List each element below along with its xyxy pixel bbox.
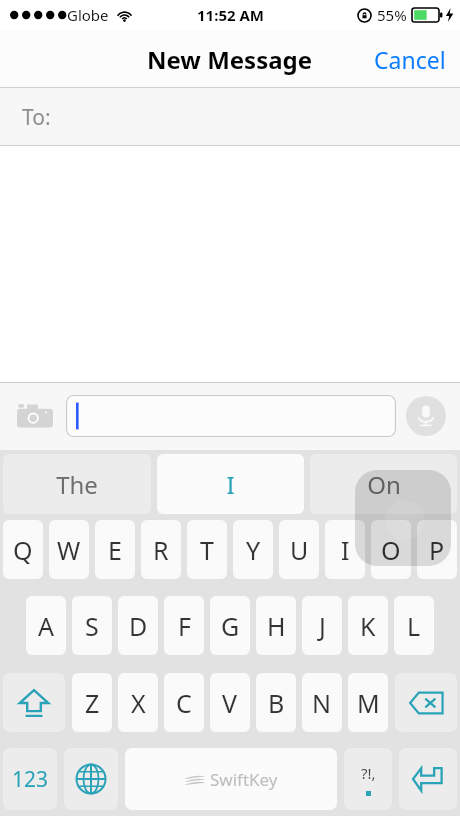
staticText: R	[153, 533, 169, 567]
staticText: G	[221, 609, 240, 643]
staticText: SwiftKey	[210, 768, 278, 791]
staticText: X	[131, 686, 146, 720]
button[interactable]: V	[210, 673, 250, 732]
button[interactable]: Q	[3, 520, 43, 579]
staticText: Q	[13, 533, 33, 567]
staticText: 55%	[377, 5, 407, 25]
button[interactable]: O	[371, 520, 411, 579]
staticText: V	[222, 686, 238, 720]
button[interactable]: R	[141, 520, 181, 579]
button[interactable]: G	[210, 596, 250, 655]
button[interactable]: Change language	[64, 748, 118, 810]
button[interactable]: E	[95, 520, 135, 579]
button[interactable]: N	[302, 673, 342, 732]
button[interactable]: Punctuation	[344, 748, 392, 810]
staticText: 11:52 AM	[197, 5, 264, 25]
button[interactable]: Return	[399, 748, 457, 810]
button[interactable]: H	[256, 596, 296, 655]
staticText: D	[129, 609, 148, 643]
button[interactable]: K	[348, 596, 388, 655]
staticText: Globe	[67, 5, 109, 25]
button[interactable]: Y	[233, 520, 273, 579]
button[interactable]: Z	[72, 673, 112, 732]
staticText: H	[267, 609, 286, 643]
staticText: Y	[246, 533, 261, 567]
button[interactable]	[66, 395, 396, 437]
staticText: The	[56, 468, 98, 501]
button[interactable]: M	[348, 673, 388, 732]
button[interactable]: S	[72, 596, 112, 655]
staticText: A	[38, 609, 54, 643]
button[interactable]: A	[26, 596, 66, 655]
button[interactable]: I	[157, 454, 304, 514]
button[interactable]: J	[302, 596, 342, 655]
staticText: C	[176, 686, 192, 720]
staticText: L	[407, 609, 421, 643]
staticText: S	[85, 609, 99, 643]
button[interactable]: Space	[125, 748, 337, 810]
button[interactable]: B	[256, 673, 296, 732]
staticText: O	[381, 533, 401, 567]
button[interactable]: W	[49, 520, 89, 579]
staticText: N	[312, 686, 332, 720]
staticText: T	[200, 533, 214, 567]
button[interactable]: On	[310, 454, 457, 514]
button[interactable]: X	[118, 673, 158, 732]
staticText: J	[319, 609, 326, 643]
staticText: 123	[12, 765, 49, 794]
staticText: U	[290, 533, 309, 567]
button[interactable]: D	[118, 596, 158, 655]
button[interactable]: F	[164, 596, 204, 655]
button[interactable]: L	[394, 596, 434, 655]
button[interactable]: Camera	[14, 395, 56, 437]
button[interactable]: P	[417, 520, 457, 579]
button[interactable]: Voice input	[406, 396, 446, 436]
button[interactable]: Numbers	[3, 748, 57, 810]
staticText: M	[357, 686, 380, 720]
button[interactable]: The	[3, 454, 151, 514]
staticText: Cancel	[374, 44, 446, 75]
staticText: I	[341, 533, 350, 567]
staticText: ?!,	[361, 763, 376, 783]
staticText: B	[268, 686, 285, 720]
staticText: P	[429, 533, 445, 567]
staticText: E	[108, 533, 122, 567]
button[interactable]: Cancel	[360, 34, 460, 85]
staticText: K	[360, 609, 376, 643]
staticText: To:	[22, 103, 51, 132]
staticText: Z	[85, 686, 100, 720]
button[interactable]: To:	[0, 88, 460, 146]
button[interactable]: C	[164, 673, 204, 732]
button[interactable]: Backspace	[395, 673, 457, 732]
button[interactable]: U	[279, 520, 319, 579]
staticText: I	[226, 468, 235, 501]
button[interactable]: Shift	[3, 673, 65, 732]
button[interactable]: I	[325, 520, 365, 579]
staticText: W	[57, 533, 81, 567]
staticText: F	[178, 609, 191, 643]
staticText: On	[367, 468, 401, 501]
staticText: New Message	[147, 43, 313, 76]
button[interactable]: T	[187, 520, 227, 579]
